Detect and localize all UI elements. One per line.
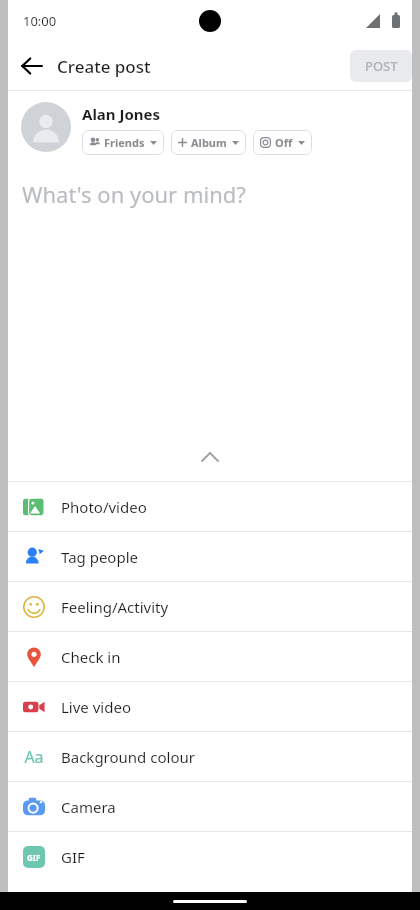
staticText: Camera (61, 797, 116, 817)
staticText: Feeling/Activity (61, 597, 169, 617)
staticText: Alan Jones (82, 104, 161, 124)
staticText: Album (191, 135, 227, 150)
button[interactable]: Aa (8, 732, 412, 781)
staticText: 10:00 (23, 12, 57, 30)
button[interactable]: Tag people (8, 532, 412, 581)
staticText: POST (365, 57, 398, 75)
button[interactable]: Back (12, 46, 52, 86)
button[interactable]: Photo/video (8, 482, 412, 531)
button[interactable]: Camera (8, 782, 412, 831)
staticText: Aa (24, 746, 44, 768)
staticText: Tag people (61, 547, 138, 567)
button[interactable]: GIF (8, 832, 412, 881)
staticText: What's on your mind? (22, 179, 246, 209)
button[interactable]: Album (171, 130, 246, 155)
button[interactable]: Off (253, 130, 312, 155)
button[interactable]: Friends (82, 130, 164, 155)
staticText: Photo/video (61, 497, 147, 517)
button[interactable]: POST (350, 50, 412, 82)
staticText: Off (275, 135, 293, 150)
button[interactable]: Live video (8, 682, 412, 731)
staticText: Background colour (61, 747, 195, 767)
staticText: GIF (27, 852, 41, 863)
button[interactable]: Check in (8, 632, 412, 681)
staticText: Friends (104, 135, 145, 150)
staticText: Check in (61, 647, 121, 667)
staticText: GIF (61, 847, 85, 867)
staticText: Live video (61, 697, 131, 717)
button[interactable]: Feeling/Activity (8, 582, 412, 631)
staticText: Create post (57, 55, 151, 78)
